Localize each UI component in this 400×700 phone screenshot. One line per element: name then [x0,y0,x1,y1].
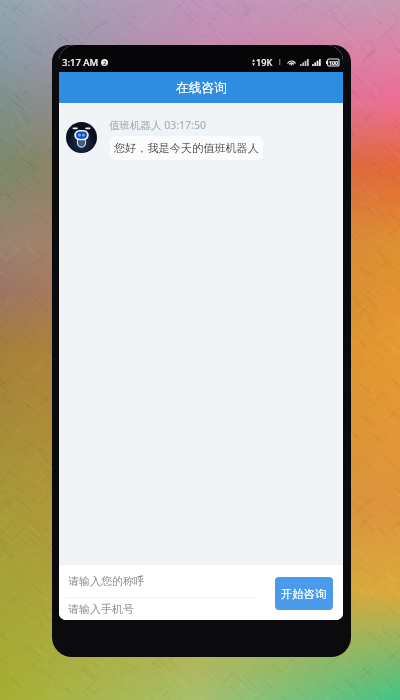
staticText: 在线咨询 [176,80,227,96]
staticText: 请输入手机号 [68,602,134,616]
staticText: 3:17 AM [62,56,99,69]
button[interactable]: 开始咨询 [275,577,333,610]
staticText: 您好，我是今天的值班机器人 [114,141,259,155]
button[interactable]: 请输入手机号 [59,598,343,620]
staticText: 19K [256,56,273,69]
staticText: 值班机器人 03:17:50 [109,118,206,132]
staticText: 请输入您的称呼 [68,574,145,588]
button[interactable]: 请输入您的称呼 [59,565,343,597]
button[interactable]: Bot avatar [66,122,97,153]
button[interactable]: 您好，我是今天的值班机器人 [110,136,263,160]
staticText: 100 [329,59,338,66]
staticText: 2 [103,59,107,66]
staticText: 开始咨询 [281,587,327,601]
